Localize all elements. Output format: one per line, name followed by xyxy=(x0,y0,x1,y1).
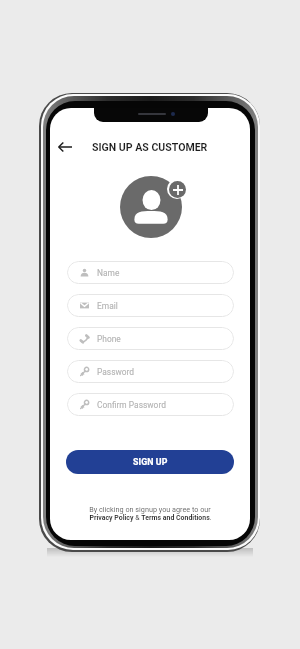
staticText: SIGN UP AS CUSTOMER xyxy=(92,141,208,153)
staticText: Confirm Password xyxy=(97,400,166,410)
staticText: Name xyxy=(97,268,120,278)
button[interactable]: Phone xyxy=(67,327,234,350)
button[interactable]: Privacy Policy & Terms and Conditions. xyxy=(89,514,212,522)
button[interactable]: Add photo xyxy=(167,179,187,199)
staticText: SIGN UP xyxy=(133,457,168,467)
staticText: Password xyxy=(97,367,135,377)
button[interactable]: Back xyxy=(53,135,77,159)
button[interactable]: SIGN UP xyxy=(66,450,234,474)
button[interactable]: Confirm Password xyxy=(67,393,234,416)
staticText: Phone xyxy=(97,334,121,344)
staticText: Email xyxy=(97,301,118,311)
button[interactable]: Password xyxy=(67,360,234,383)
staticText: By clicking on signup you agree to our xyxy=(89,505,211,513)
button[interactable]: Email xyxy=(67,294,234,317)
button[interactable]: Profile photo xyxy=(120,176,182,238)
button[interactable]: Name xyxy=(67,261,234,284)
